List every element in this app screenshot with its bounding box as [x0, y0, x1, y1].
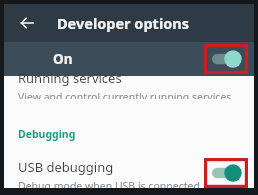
button[interactable]: USB debugging — [4, 158, 254, 188]
staticText: Developer options — [57, 13, 189, 33]
staticText: On — [53, 50, 73, 68]
staticText: USB debugging — [18, 158, 114, 176]
button[interactable]: Running services — [4, 76, 254, 106]
staticText: View and control currently running servi… — [18, 90, 232, 99]
button[interactable]: USB debugging on — [204, 158, 248, 188]
button[interactable]: Back — [14, 10, 40, 36]
staticText: Running services — [18, 69, 122, 87]
staticText: Debugging — [18, 127, 76, 141]
button[interactable]: On — [4, 42, 254, 76]
button[interactable]: Developer options on — [204, 44, 248, 74]
staticText: Debug mode when USB is connected — [18, 179, 200, 188]
